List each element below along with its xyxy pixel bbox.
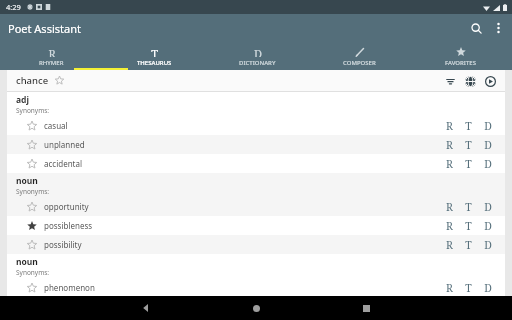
button[interactable]: Favorite casual (25, 119, 38, 132)
button[interactable]: Favorite casual (7, 116, 505, 135)
staticText: R (48, 46, 56, 57)
staticText: D (484, 200, 492, 214)
button[interactable]: Favorite possibility (7, 235, 505, 254)
button[interactable]: T (103, 42, 206, 70)
staticText: possibleness (44, 220, 442, 231)
button[interactable]: Favorite possibility (25, 238, 38, 251)
staticText: Poet Assistant (8, 21, 81, 36)
button[interactable]: FAVORITES (410, 42, 512, 70)
staticText: R (446, 138, 453, 152)
staticText: R (446, 219, 453, 233)
button[interactable]: Favorite (54, 75, 65, 86)
staticText: D (484, 157, 492, 171)
button[interactable]: Dictionary (480, 137, 495, 152)
staticText: unplanned (44, 139, 442, 150)
staticText: D (484, 119, 492, 133)
button[interactable]: Rhymer (442, 137, 457, 152)
button[interactable]: Rhymer (442, 218, 457, 233)
button[interactable]: Thesaurus (461, 237, 476, 252)
button[interactable]: Rhymer (442, 199, 457, 214)
staticText: T (465, 281, 472, 295)
staticText: opportunity (44, 201, 442, 212)
button[interactable]: Favorite accidental (7, 154, 505, 173)
staticText: T (151, 46, 158, 57)
staticText: Synonyms: (16, 187, 50, 196)
staticText: possibility (44, 239, 442, 250)
button[interactable]: Dictionary (480, 199, 495, 214)
button[interactable]: Thesaurus (461, 118, 476, 133)
button[interactable]: Web search (463, 74, 477, 88)
button[interactable]: Rhymer (442, 237, 457, 252)
button[interactable]: COMPOSER (308, 42, 410, 70)
button[interactable]: Dictionary (480, 237, 495, 252)
staticText: D (254, 46, 262, 57)
button[interactable]: Thesaurus (461, 280, 476, 295)
staticText: RHYMER (39, 59, 64, 67)
button[interactable]: Favorite unplanned (25, 138, 38, 151)
button[interactable]: Favorite possibleness (7, 216, 505, 235)
button[interactable]: Dictionary (480, 218, 495, 233)
staticText: R (446, 238, 453, 252)
staticText: T (465, 138, 472, 152)
staticText: COMPOSER (343, 59, 376, 67)
button[interactable]: Play pronunciation (483, 74, 497, 88)
staticText: THESAURUS (137, 59, 172, 67)
staticText: R (446, 200, 453, 214)
button[interactable]: Recent apps (357, 299, 375, 317)
button[interactable]: Favorite possibleness (25, 219, 38, 232)
button[interactable]: Favorite opportunity (25, 200, 38, 213)
staticText: casual (44, 120, 442, 131)
button[interactable]: Filter (443, 74, 457, 88)
staticText: T (465, 200, 472, 214)
staticText: adj (16, 94, 29, 106)
button[interactable]: Dictionary (480, 280, 495, 295)
button[interactable]: Favorite opportunity (7, 197, 505, 216)
staticText: T (465, 157, 472, 171)
staticText: T (465, 219, 472, 233)
button[interactable]: Search (464, 16, 488, 40)
staticText: FAVORITES (445, 59, 477, 67)
button[interactable]: Thesaurus (461, 218, 476, 233)
button[interactable]: Rhymer (442, 118, 457, 133)
staticText: T (465, 238, 472, 252)
button[interactable]: Favorite phenomenon (7, 278, 505, 296)
staticText: T (465, 119, 472, 133)
staticText: D (484, 138, 492, 152)
button[interactable]: Thesaurus (461, 137, 476, 152)
staticText: Synonyms: (16, 268, 50, 277)
staticText: noun (16, 256, 38, 268)
button[interactable]: Favorite accidental (25, 157, 38, 170)
button[interactable]: R (0, 42, 103, 70)
staticText: accidental (44, 158, 442, 169)
staticText: chance (16, 74, 49, 87)
button[interactable]: Rhymer (442, 280, 457, 295)
staticText: Synonyms: (16, 106, 50, 115)
staticText: R (446, 119, 453, 133)
button[interactable]: Favorite unplanned (7, 135, 505, 154)
button[interactable]: Dictionary (480, 118, 495, 133)
staticText: noun (16, 175, 38, 187)
staticText: phenomenon (44, 282, 442, 293)
staticText: 4:29 (6, 2, 21, 12)
staticText: D (484, 219, 492, 233)
staticText: D (484, 281, 492, 295)
staticText: R (446, 157, 453, 171)
button[interactable]: Dictionary (480, 156, 495, 171)
button[interactable]: Home (247, 299, 265, 317)
button[interactable]: More options (488, 18, 508, 38)
button[interactable]: Thesaurus (461, 199, 476, 214)
staticText: D (484, 238, 492, 252)
button[interactable]: Back (137, 299, 155, 317)
button[interactable]: Favorite phenomenon (25, 281, 38, 294)
button[interactable]: Thesaurus (461, 156, 476, 171)
button[interactable]: Rhymer (442, 156, 457, 171)
button[interactable]: D (206, 42, 308, 70)
staticText: DICTIONARY (239, 59, 276, 67)
staticText: R (446, 281, 453, 295)
